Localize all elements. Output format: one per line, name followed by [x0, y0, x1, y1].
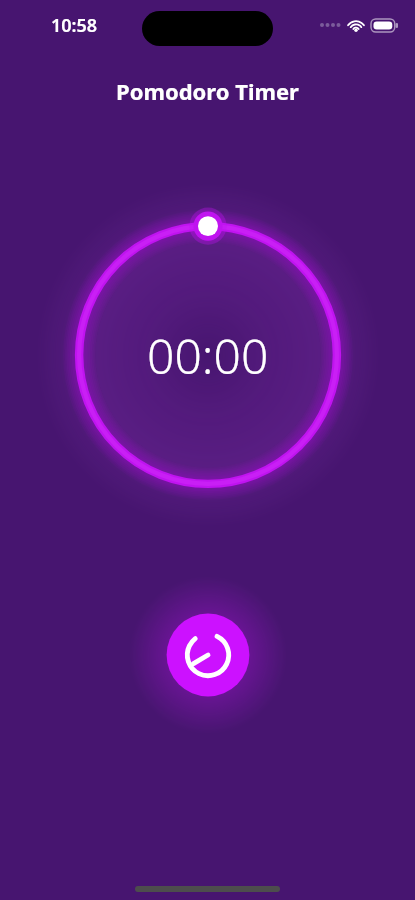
button[interactable]: Start timer [148, 595, 268, 715]
staticText: 00:00 [147, 323, 269, 388]
staticText: Pomodoro Timer [116, 76, 299, 106]
staticText: 10:58 [51, 13, 98, 38]
